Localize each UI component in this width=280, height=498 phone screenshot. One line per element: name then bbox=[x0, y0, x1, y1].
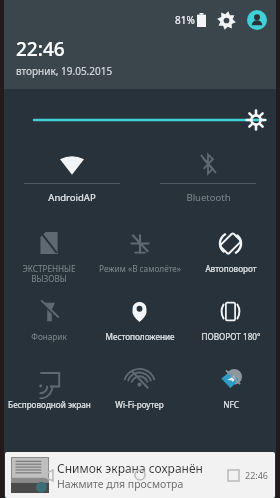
button[interactable]: ЭКСТРЕННЫЕ ВЫЗОВЫ bbox=[4, 221, 94, 289]
staticText: 81% bbox=[175, 13, 195, 27]
staticText: NFC bbox=[223, 399, 239, 410]
button[interactable]: Recent apps bbox=[223, 465, 243, 485]
staticText: Автоповорот bbox=[205, 263, 257, 274]
button[interactable]: ПОВОРОТ 180° bbox=[185, 289, 276, 357]
button[interactable]: Brightness bbox=[4, 107, 276, 133]
button[interactable]: Back bbox=[37, 465, 57, 485]
button[interactable]: Режим «В самолёте» bbox=[94, 221, 185, 289]
button[interactable]: Автоповорот bbox=[185, 221, 276, 289]
button[interactable]: Home bbox=[130, 465, 150, 485]
button[interactable]: Фонарик bbox=[4, 289, 94, 357]
button[interactable]: User profile bbox=[246, 9, 268, 31]
staticText: ПОВОРОТ 180° bbox=[201, 331, 261, 342]
staticText: Беспроводной экран bbox=[8, 399, 91, 410]
staticText: 22:46 bbox=[245, 469, 269, 481]
staticText: AndroidAP bbox=[48, 191, 96, 204]
staticText: Фонарик bbox=[31, 331, 67, 342]
button[interactable]: AndroidAP bbox=[4, 149, 140, 211]
button[interactable]: Беспроводной экран bbox=[4, 357, 94, 425]
button[interactable]: Снимок экрана сохранён bbox=[5, 452, 275, 498]
staticText: Местоположение bbox=[105, 331, 175, 342]
staticText: ЭКСТРЕННЫЕ ВЫЗОВЫ bbox=[22, 263, 76, 284]
button[interactable]: Местоположение bbox=[94, 289, 185, 357]
staticText: Bluetooth bbox=[186, 191, 231, 204]
staticText: Wi-Fi-роутер bbox=[115, 399, 164, 410]
button[interactable]: NFC bbox=[185, 357, 276, 425]
button[interactable]: Bluetooth bbox=[140, 149, 276, 211]
staticText: Режим «В самолёте» bbox=[99, 263, 181, 274]
staticText: 22:46 bbox=[16, 36, 65, 62]
button[interactable]: Settings bbox=[215, 9, 237, 31]
button[interactable]: Wi-Fi-роутер bbox=[94, 357, 185, 425]
staticText: вторник, 19.05.2015 bbox=[16, 64, 113, 78]
staticText: Нажмите для просмотра bbox=[57, 477, 184, 491]
staticText: Снимок экрана сохранён bbox=[57, 460, 203, 476]
